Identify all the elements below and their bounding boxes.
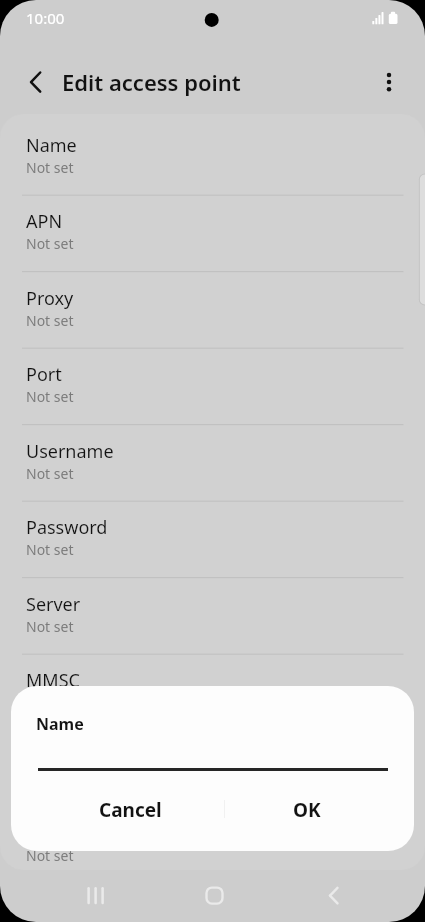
staticText: Not set [26, 846, 74, 865]
button[interactable]: Cancel [50, 788, 211, 832]
button[interactable]: Password [0, 501, 425, 578]
button[interactable]: MMSC [0, 654, 425, 731]
button[interactable]: Home [185, 870, 243, 922]
staticText: Not set [26, 770, 74, 789]
staticText: MMSC [26, 668, 80, 693]
staticText: Server [26, 592, 81, 617]
button[interactable]: MMS port [0, 807, 425, 870]
staticText: Name [26, 133, 77, 158]
staticText: Username [26, 439, 114, 464]
staticText: Port [26, 362, 62, 387]
button[interactable]: Server [0, 578, 425, 655]
staticText: Not set [26, 311, 74, 330]
staticText: OK [293, 797, 321, 823]
staticText: Not set [26, 158, 74, 177]
button[interactable]: APN [0, 195, 425, 272]
button[interactable]: Recent apps [66, 870, 124, 922]
button[interactable]: Port [0, 348, 425, 425]
button[interactable]: Back [305, 870, 363, 922]
staticText: MMS proxy [26, 745, 121, 770]
staticText: 10:00 [26, 8, 65, 28]
staticText: Not set [26, 387, 74, 406]
staticText: Not set [26, 234, 74, 253]
button[interactable]: Username [0, 425, 425, 502]
staticText: Cancel [99, 797, 162, 823]
staticText: Edit access point [62, 67, 241, 97]
button[interactable]: OK [224, 788, 390, 832]
staticText: Password [26, 515, 108, 540]
staticText: Not set [26, 464, 74, 483]
button[interactable]: MMS proxy [0, 731, 425, 808]
staticText: Not set [26, 540, 74, 559]
button[interactable]: More options [369, 62, 409, 102]
button[interactable]: Navigate up [15, 62, 55, 102]
staticText: Name [36, 713, 84, 735]
button[interactable]: Name [0, 119, 425, 196]
staticText: APN [26, 209, 63, 234]
staticText: Not set [26, 617, 74, 636]
button[interactable]: Proxy [0, 272, 425, 349]
staticText: Proxy [26, 286, 74, 311]
